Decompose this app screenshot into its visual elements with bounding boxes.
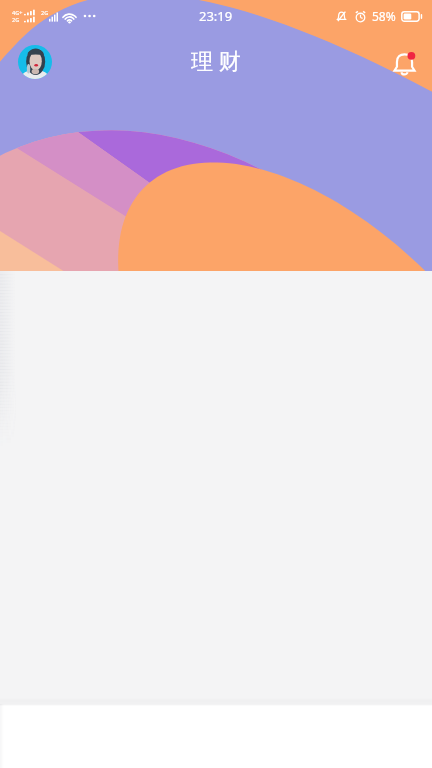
button[interactable]: Profile: [18, 45, 52, 79]
staticText: 4G+: [12, 9, 23, 16]
staticText: 2G: [12, 16, 20, 23]
staticText: 理 财: [191, 45, 241, 75]
staticText: 2G: [41, 9, 49, 16]
staticText: 23:19: [199, 7, 233, 25]
staticText: 58%: [372, 8, 396, 24]
button[interactable]: Notifications: [385, 43, 423, 81]
